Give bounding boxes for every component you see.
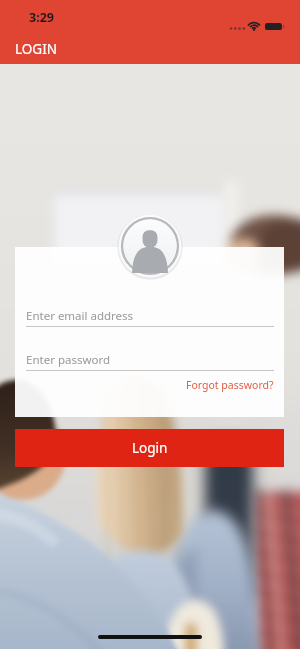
staticText: LOGIN <box>15 40 58 58</box>
staticText: Enter password <box>26 352 111 368</box>
staticText: Login <box>132 439 168 457</box>
button[interactable]: Login <box>15 429 284 467</box>
button[interactable]: Forgot password? <box>26 376 274 394</box>
staticText: 3:29 <box>29 9 54 26</box>
staticText: Enter email address <box>26 308 134 324</box>
other: Status icons <box>228 20 286 34</box>
staticText: Forgot password? <box>186 378 274 392</box>
